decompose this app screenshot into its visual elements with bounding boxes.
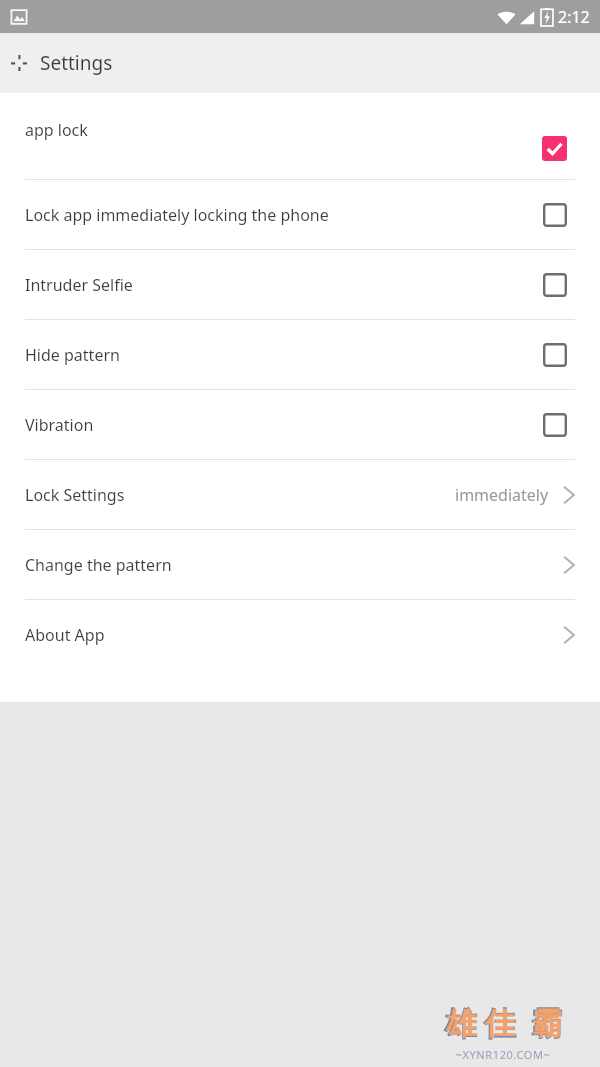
other: Navigate up (11, 55, 27, 71)
staticText: immediately (455, 484, 549, 506)
other: Toggle (543, 343, 567, 367)
staticText: About App (25, 624, 105, 646)
staticText: app lock (25, 119, 88, 141)
button[interactable]: app lock (0, 93, 600, 179)
staticText: Lock app immediately locking the phone (25, 204, 329, 226)
staticText: ~XYNR120.COM~ (418, 1047, 588, 1062)
staticText: Lock Settings (25, 484, 125, 506)
staticText: 霸 (532, 1005, 562, 1043)
other: Toggle (543, 273, 567, 297)
button[interactable]: Lock Settings (0, 460, 600, 529)
staticText: Hide pattern (25, 344, 120, 366)
button[interactable]: Lock app immediately locking the phone (0, 180, 600, 249)
staticText: 2:12 (558, 6, 590, 28)
staticText: 雄 (446, 1005, 476, 1043)
button[interactable]: Change the pattern (0, 530, 600, 599)
staticText: 佳 (485, 1005, 515, 1043)
button[interactable]: About App (0, 600, 600, 669)
staticText: Intruder Selfie (25, 274, 133, 296)
staticText: Settings (40, 50, 113, 76)
other: Toggle (543, 413, 567, 437)
other: app lock enabled (542, 136, 567, 161)
staticText: 雄 (444, 1003, 477, 1045)
staticText: 佳 (483, 1003, 516, 1045)
button[interactable]: Hide pattern (0, 320, 600, 389)
button[interactable]: Intruder Selfie (0, 250, 600, 319)
button[interactable]: Vibration (0, 390, 600, 459)
button[interactable]: Navigate up (0, 33, 600, 93)
staticText: Vibration (25, 414, 94, 436)
other: Toggle (543, 203, 567, 227)
staticText: Change the pattern (25, 554, 172, 576)
staticText: 霸 (530, 1003, 563, 1045)
